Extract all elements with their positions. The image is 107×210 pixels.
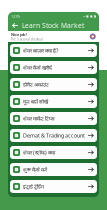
button[interactable]: शेयर कैसे खरीदें [10,61,97,74]
button[interactable]: Back [10,20,21,31]
button[interactable]: इंट्राडे ट्रेडिंग [10,180,97,193]
staticText: शुरू कैसे करें [23,166,47,173]
button[interactable]: डीमैट अकाउंट [10,78,97,91]
button[interactable]: Demat & Trading account [10,129,97,142]
staticText: Demat & Trading account [23,132,85,139]
staticText: मूल बातें सीखें [23,98,48,105]
staticText: 12:05 [11,13,20,19]
staticText: शेयर मार्केट टिप्स [23,115,55,122]
staticText: शेयर (स्टॉक) क्या [23,149,55,156]
button[interactable]: शुरू कैसे करें [10,163,97,176]
staticText: Nice job! [11,32,27,37]
staticText: Learn Stock Market [22,21,84,30]
button[interactable]: मूल बातें सीखें [10,95,97,108]
staticText: शेयर कैसे खरीदें [23,64,52,71]
button[interactable]: Nice job! [8,31,99,42]
button[interactable]: शेयर मार्केट टिप्स [10,112,97,125]
staticText: शेयर बाज़ार क्या है? [23,47,58,54]
button[interactable]: शेयर बाज़ार क्या है? [10,44,97,57]
staticText: इंट्राडे ट्रेडिंग [23,183,44,190]
button[interactable]: शेयर (स्टॉक) क्या [10,146,97,159]
staticText: The 3-second checkout [11,38,43,41]
staticText: ⌁ ▪ ▪ ◗ [83,14,96,18]
staticText: डीमैट अकाउंट [23,81,49,88]
